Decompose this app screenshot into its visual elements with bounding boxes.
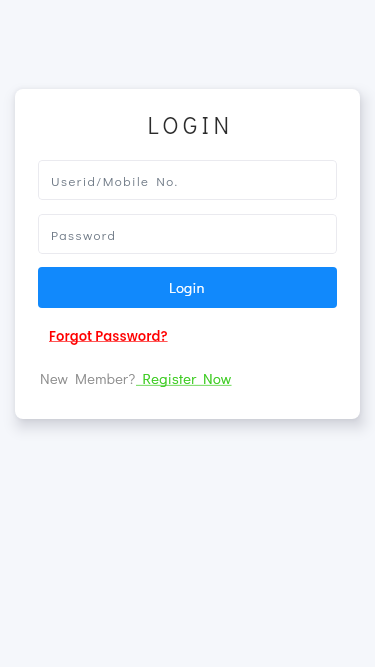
staticText: Password [51,226,117,243]
button[interactable]: Userid/Mobile No. [38,160,337,200]
staticText: New Member? [40,369,136,388]
button[interactable]: Forgot Password? [49,327,168,345]
staticText: Userid/Mobile No. [51,172,179,189]
button[interactable]: Login [38,267,337,308]
button[interactable]: Register Now [136,369,232,388]
staticText: LOGIN [18,109,360,140]
staticText: Login [169,278,205,297]
button[interactable]: Password [38,214,337,254]
